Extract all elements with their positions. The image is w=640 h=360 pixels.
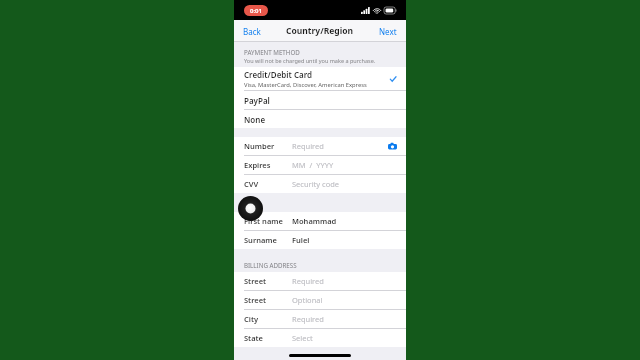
button[interactable]: Street: [234, 272, 406, 290]
button[interactable]: Next: [370, 20, 406, 42]
button[interactable]: Scan card with camera: [387, 141, 398, 152]
staticText: Fulel: [292, 235, 310, 245]
staticText: PayPal: [244, 95, 270, 106]
staticText: Required: [292, 141, 324, 151]
button[interactable]: Street: [234, 291, 406, 309]
other: Selected: [388, 74, 398, 84]
button[interactable]: First name: [234, 212, 406, 230]
staticText: 0:01: [250, 7, 262, 15]
staticText: State: [244, 333, 263, 343]
button[interactable]: Expires: [234, 156, 406, 174]
button[interactable]: Back: [234, 20, 270, 42]
staticText: Required: [292, 276, 324, 286]
button[interactable]: None: [234, 110, 406, 128]
staticText: Required: [292, 314, 324, 324]
button[interactable]: Credit/Debit Card: [234, 67, 406, 90]
staticText: City: [244, 314, 259, 324]
staticText: Back: [243, 26, 261, 37]
staticText: Country/Region: [286, 25, 354, 37]
button[interactable]: State: [234, 329, 406, 347]
staticText: Credit/Debit Card: [244, 69, 313, 80]
staticText: PAYMENT METHOD: [244, 48, 300, 56]
button[interactable]: City: [234, 310, 406, 328]
staticText: You will not be charged until you make a…: [244, 57, 376, 64]
staticText: CVV: [244, 179, 259, 189]
staticText: MM / YYYY: [292, 160, 334, 170]
staticText: Optional: [292, 295, 323, 305]
staticText: Visa, MasterCard, Discover, American Exp…: [244, 81, 367, 89]
staticText: Surname: [244, 235, 277, 245]
staticText: Number: [244, 141, 275, 151]
button[interactable]: PayPal: [234, 91, 406, 109]
staticText: Mohammad: [292, 216, 337, 226]
staticText: Street: [244, 295, 267, 305]
staticText: Select: [292, 333, 313, 343]
staticText: Expires: [244, 160, 271, 170]
staticText: Security code: [292, 179, 340, 189]
staticText: NAME: [244, 201, 262, 209]
staticText: None: [244, 114, 266, 125]
staticText: First name: [244, 216, 283, 226]
button[interactable]: CVV: [234, 175, 406, 193]
button[interactable]: Number: [234, 137, 406, 155]
staticText: BILLING ADDRESS: [244, 261, 297, 269]
staticText: Next: [379, 26, 397, 37]
button[interactable]: Surname: [234, 231, 406, 249]
staticText: Street: [244, 276, 267, 286]
